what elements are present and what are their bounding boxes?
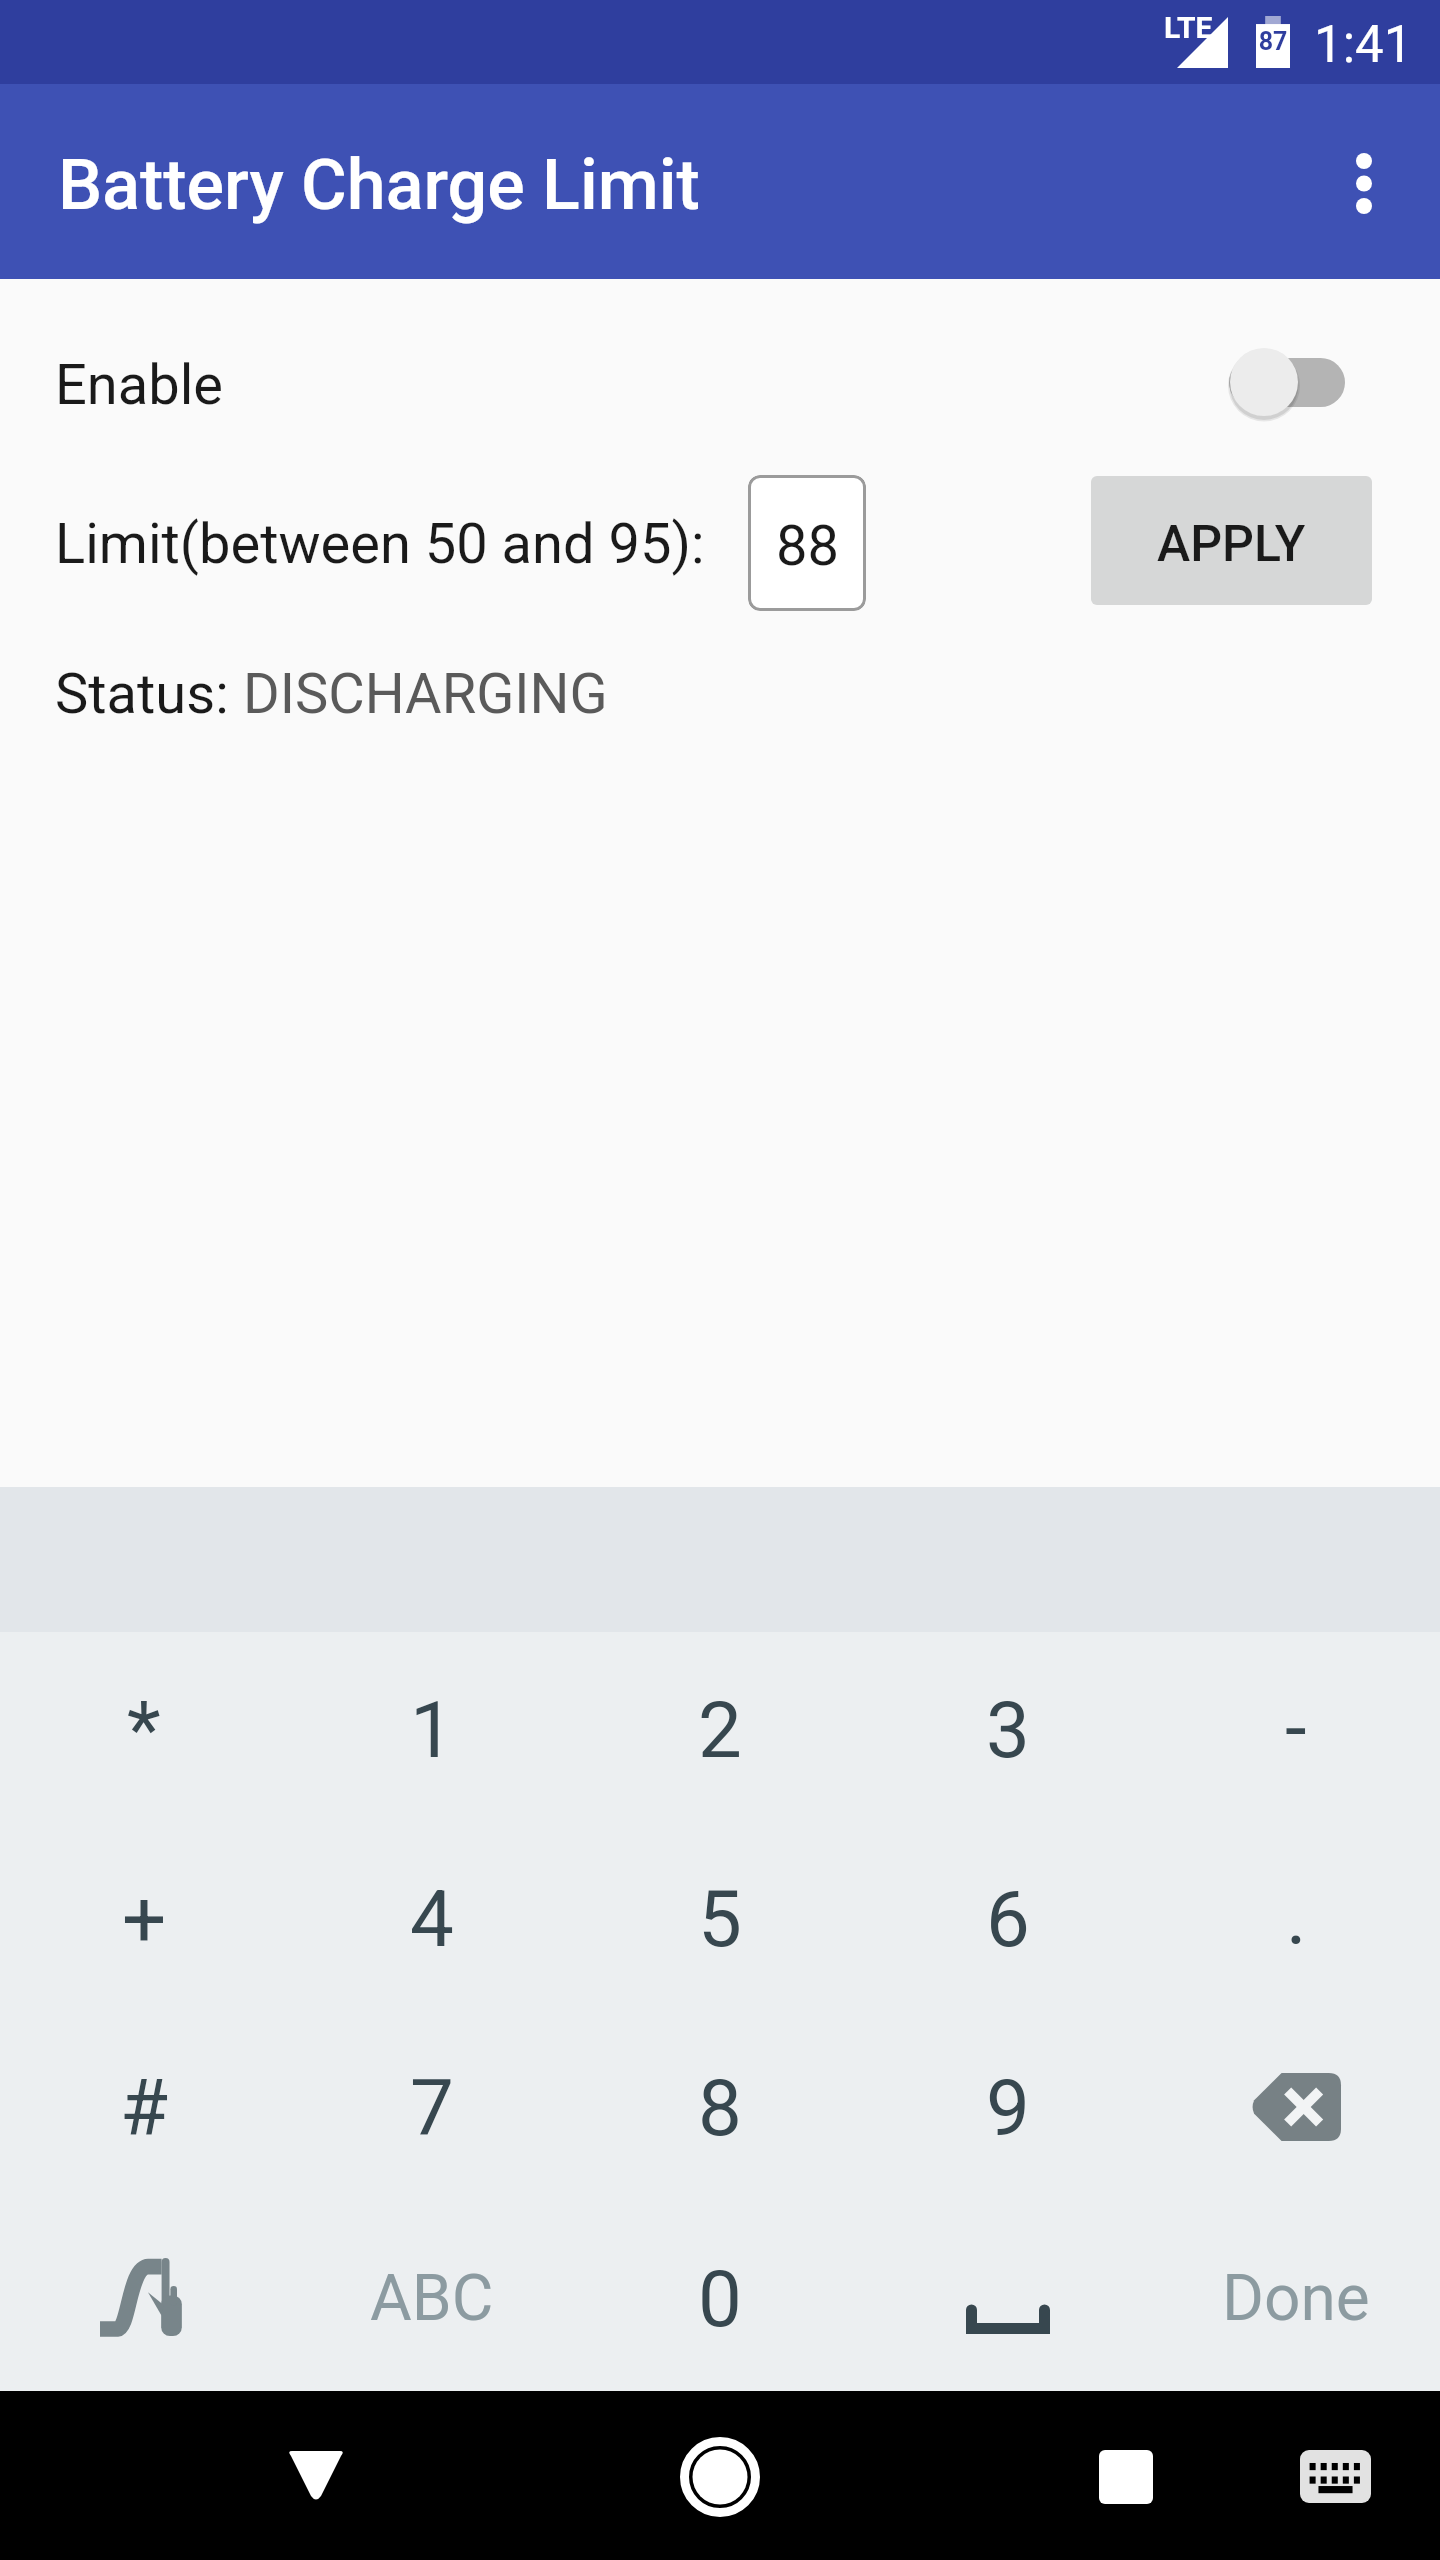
other: Delete <box>1251 2073 1341 2141</box>
button[interactable]: Space <box>864 2199 1152 2391</box>
staticText: 6 <box>986 1874 1030 1965</box>
button[interactable]: Delete <box>1152 2010 1440 2199</box>
staticText: 7 <box>410 2063 454 2154</box>
button[interactable]: - <box>1152 1632 1440 1821</box>
button[interactable]: 9 <box>864 2010 1152 2199</box>
button[interactable]: 0 <box>576 2199 864 2391</box>
staticText: 0 <box>698 2254 742 2345</box>
staticText: # <box>120 2063 169 2154</box>
button[interactable]: # <box>0 2010 288 2199</box>
staticText: Battery Charge Limit <box>58 144 700 226</box>
button[interactable]: 7 <box>288 2010 576 2199</box>
other: Space <box>966 2310 1050 2334</box>
button[interactable]: Switch keyboard <box>1259 2391 1411 2560</box>
staticText: 5 <box>698 1874 742 1965</box>
staticText: - <box>1285 1683 1307 1774</box>
staticText: 9 <box>986 2063 1030 2154</box>
staticText: 1 <box>410 1685 454 1776</box>
staticText: LTE <box>1164 10 1213 45</box>
button[interactable]: More options <box>1298 116 1430 248</box>
staticText: + <box>122 1874 167 1965</box>
button[interactable]: Done <box>1152 2199 1440 2391</box>
staticText: ABC <box>370 2261 494 2336</box>
staticText: 8 <box>698 2063 742 2154</box>
button[interactable]: Back, hide keyboard <box>240 2391 392 2560</box>
staticText: 3 <box>986 1685 1030 1776</box>
button[interactable]: . <box>1152 1821 1440 2010</box>
staticText: 2 <box>698 1685 742 1776</box>
staticText: Done <box>1222 2261 1370 2336</box>
staticText: Status: <box>55 661 243 727</box>
staticText: DISCHARGING <box>243 661 608 727</box>
button[interactable]: Recent apps <box>1050 2391 1202 2560</box>
staticText: * <box>127 1685 161 1776</box>
other: Handwriting input <box>100 2258 188 2336</box>
staticText: Limit(between 50 and 95): <box>55 511 705 577</box>
button[interactable]: 5 <box>576 1821 864 2010</box>
button[interactable]: Handwriting input <box>0 2199 288 2391</box>
button[interactable]: ABC <box>288 2199 576 2391</box>
button[interactable]: 6 <box>864 1821 1152 2010</box>
button[interactable]: 1 <box>288 1632 576 1821</box>
staticText: 88 <box>776 513 839 579</box>
button[interactable]: 8 <box>576 2010 864 2199</box>
staticText: . <box>1286 1872 1307 1963</box>
staticText: 4 <box>410 1874 454 1965</box>
button[interactable]: 4 <box>288 1821 576 2010</box>
staticText: 87 <box>1256 27 1290 56</box>
staticText: APPLY <box>1157 515 1306 574</box>
button[interactable]: Home <box>644 2391 796 2560</box>
button[interactable]: 3 <box>864 1632 1152 1821</box>
staticText: 1:41 <box>1314 15 1413 75</box>
button[interactable]: Enable switch, off <box>1214 327 1362 437</box>
button[interactable]: APPLY <box>1091 476 1372 605</box>
button[interactable]: * <box>0 1632 288 1821</box>
button[interactable]: 88 <box>748 475 866 611</box>
button[interactable]: + <box>0 1821 288 2010</box>
staticText: Enable <box>55 352 223 418</box>
button[interactable]: 2 <box>576 1632 864 1821</box>
